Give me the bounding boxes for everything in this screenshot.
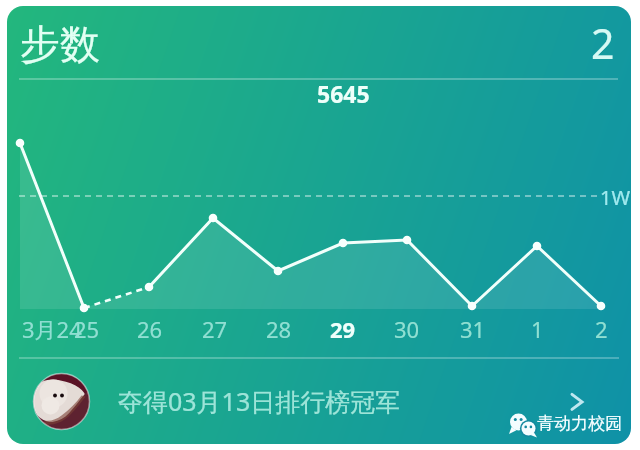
staticText: 2	[591, 15, 615, 71]
staticText: 5645	[317, 78, 370, 109]
staticText: 夺得03月13日排行榜冠军	[118, 384, 401, 418]
staticText: 29	[330, 314, 356, 344]
button[interactable]: 青动力校园	[506, 410, 622, 440]
staticText: 27	[202, 314, 228, 344]
staticText: 步数	[20, 19, 100, 69]
staticText: 3月24	[22, 314, 82, 344]
staticText: 28	[266, 314, 292, 344]
staticText: 30	[394, 314, 420, 344]
staticText: 1	[531, 314, 544, 344]
button[interactable]: Open leaderboard	[564, 385, 594, 419]
other: User avatar	[33, 373, 90, 430]
staticText: 31	[460, 314, 486, 344]
button[interactable]: User avatar	[12, 362, 619, 440]
staticText: 25	[74, 314, 100, 344]
staticText: 青动力校园	[537, 413, 622, 434]
staticText: 26	[137, 314, 163, 344]
staticText: 2	[595, 314, 608, 344]
staticText: 1W	[600, 184, 631, 211]
